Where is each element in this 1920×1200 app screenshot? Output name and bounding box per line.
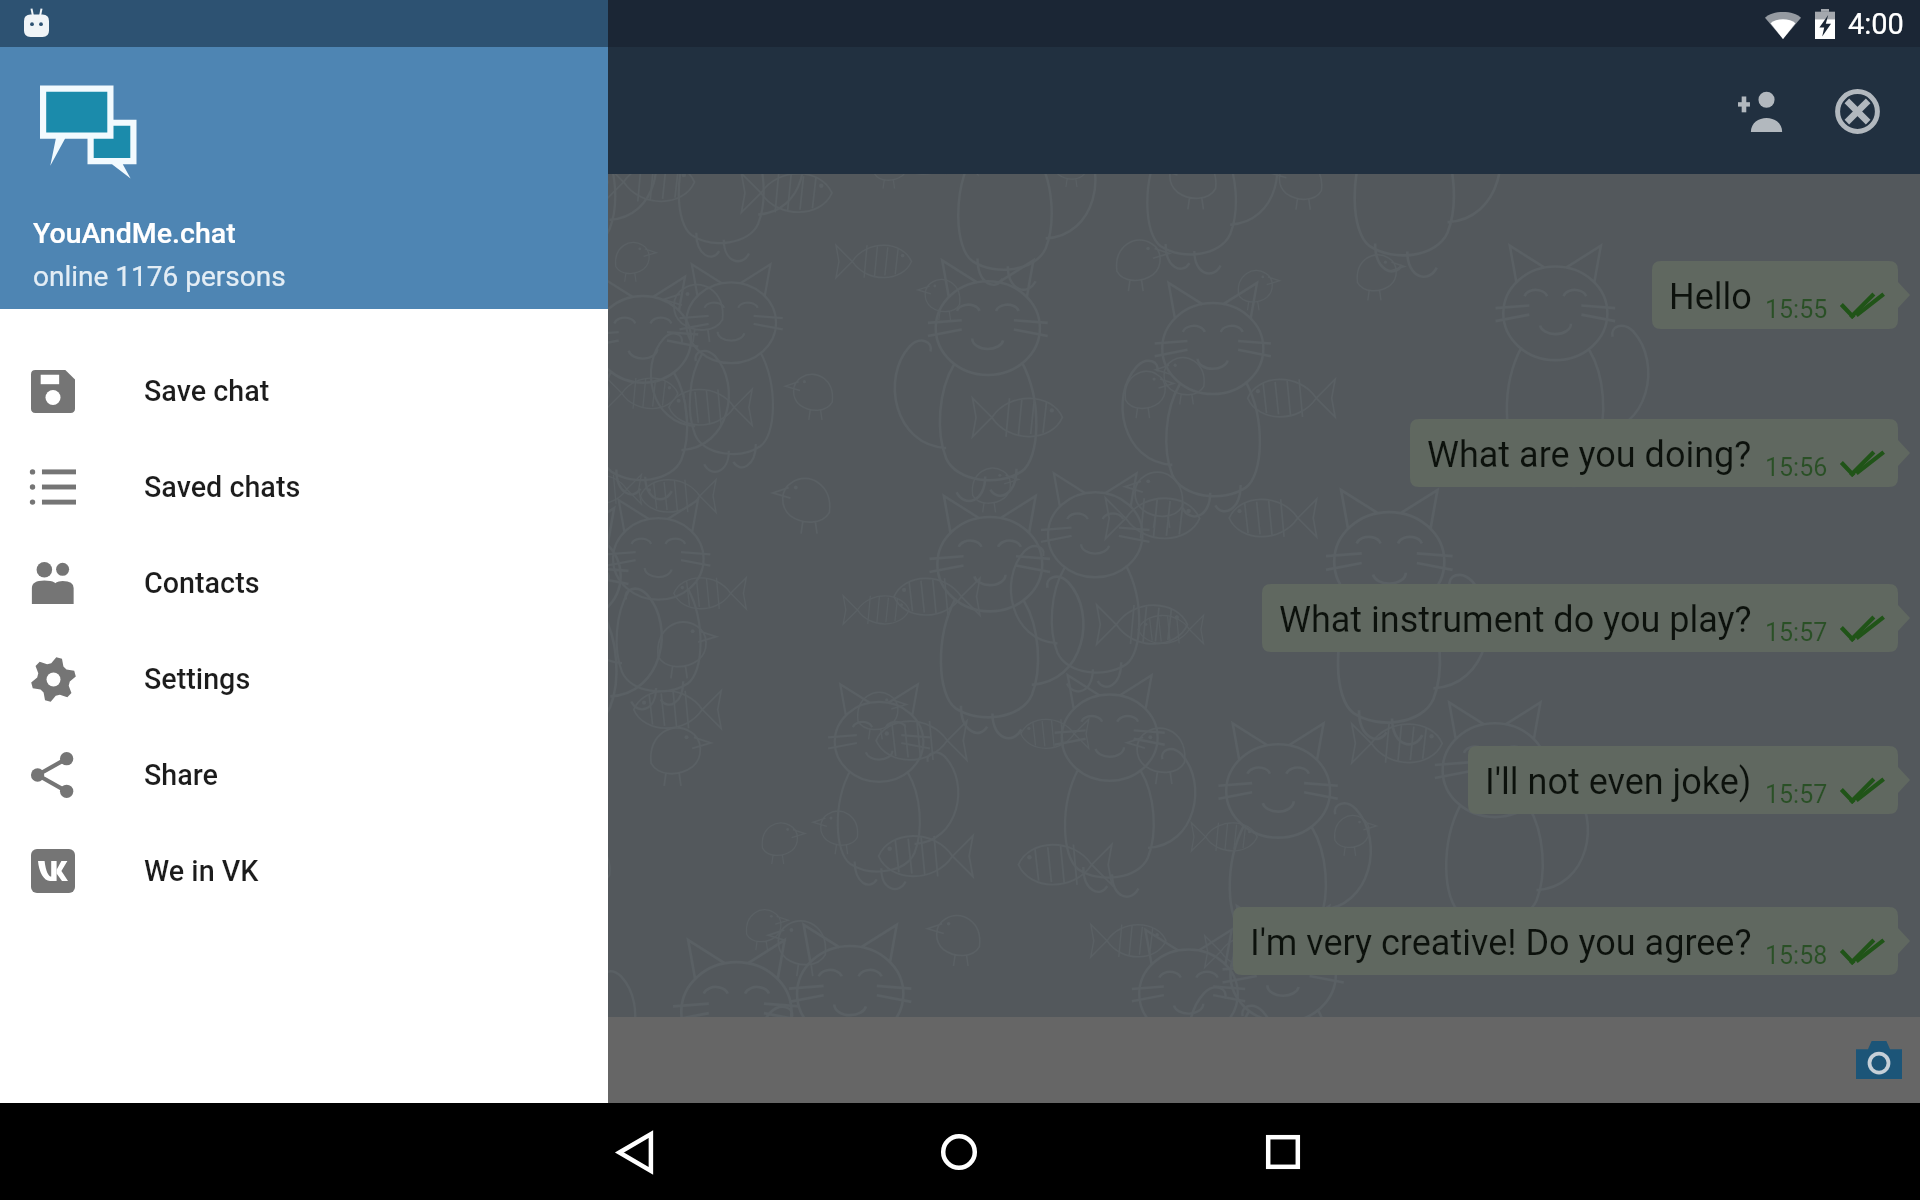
staticText: What instrument do you play? xyxy=(1279,599,1752,641)
staticText: online 1176 persons xyxy=(33,260,286,293)
staticText: We in VK xyxy=(144,854,259,888)
staticText: 15:57 xyxy=(1765,780,1828,809)
staticText: Settings xyxy=(144,662,251,696)
button[interactable]: Recents xyxy=(1238,1107,1328,1197)
staticText: Share xyxy=(144,758,219,792)
button[interactable]: YouAndMe.chat xyxy=(0,0,608,309)
button[interactable]: I'll not even joke) xyxy=(1468,746,1910,814)
button[interactable]: I'm very creative! Do you agree? xyxy=(1233,907,1910,975)
staticText: What are you doing? xyxy=(1427,434,1752,476)
button[interactable]: Camera xyxy=(1847,1028,1911,1092)
button[interactable]: What are you doing? xyxy=(1410,419,1910,487)
button[interactable]: Back xyxy=(590,1107,680,1197)
button[interactable]: Contacts xyxy=(0,535,608,631)
button[interactable]: Close xyxy=(1815,69,1899,153)
button[interactable]: Add contact xyxy=(1719,69,1803,153)
staticText: I'll not even joke) xyxy=(1485,761,1752,803)
button[interactable]: Saved chats xyxy=(0,439,608,535)
button[interactable]: Settings xyxy=(0,631,608,727)
staticText: Hello xyxy=(1669,276,1752,318)
staticText: I'm very creative! Do you agree? xyxy=(1250,922,1752,964)
staticText: 4:00 xyxy=(1848,7,1904,41)
button[interactable]: Home xyxy=(914,1107,1004,1197)
staticText: Save chat xyxy=(144,374,270,408)
button[interactable]: Hello xyxy=(1652,261,1910,329)
staticText: Saved chats xyxy=(144,470,301,504)
staticText: Contacts xyxy=(144,566,260,600)
button[interactable]: What instrument do you play? xyxy=(1262,584,1910,652)
staticText: 15:56 xyxy=(1765,453,1828,482)
button[interactable]: Save chat xyxy=(0,343,608,439)
button[interactable]: We in VK xyxy=(0,823,608,919)
staticText: 15:57 xyxy=(1765,618,1828,647)
button[interactable]: Share xyxy=(0,727,608,823)
staticText: 15:55 xyxy=(1765,295,1828,324)
staticText: 15:58 xyxy=(1765,941,1828,970)
staticText: YouAndMe.chat xyxy=(33,217,236,250)
